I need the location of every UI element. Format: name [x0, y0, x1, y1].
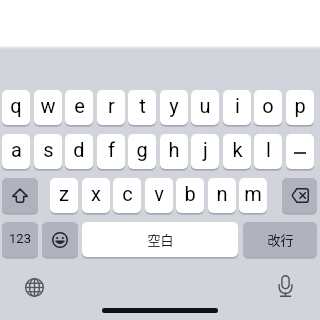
- button[interactable]: y: [160, 90, 188, 125]
- button[interactable]: Emoji: [42, 222, 78, 257]
- button[interactable]: Dash: [286, 134, 314, 169]
- button[interactable]: p: [286, 90, 314, 125]
- button[interactable]: Dictation: [269, 275, 301, 297]
- button[interactable]: m: [239, 178, 267, 213]
- staticText: j: [203, 138, 208, 161]
- staticText: x: [91, 182, 101, 205]
- staticText: q: [10, 94, 22, 117]
- button[interactable]: 改行: [243, 222, 317, 257]
- button[interactable]: v: [145, 178, 173, 213]
- button[interactable]: 空白: [82, 222, 238, 257]
- staticText: e: [74, 94, 85, 117]
- button[interactable]: e: [65, 90, 93, 125]
- button[interactable]: f: [97, 134, 125, 169]
- button[interactable]: s: [34, 134, 62, 169]
- button[interactable]: q: [2, 90, 30, 125]
- button[interactable]: x: [82, 178, 110, 213]
- staticText: b: [184, 182, 196, 205]
- staticText: l: [266, 138, 271, 161]
- staticText: v: [154, 182, 164, 205]
- button[interactable]: Shift: [2, 178, 38, 213]
- button[interactable]: i: [223, 90, 251, 125]
- staticText: m: [244, 182, 262, 205]
- button[interactable]: j: [191, 134, 219, 169]
- staticText: u: [199, 94, 211, 117]
- staticText: p: [294, 94, 306, 117]
- button[interactable]: z: [50, 178, 78, 213]
- staticText: 123: [9, 231, 31, 246]
- staticText: s: [43, 138, 54, 161]
- staticText: z: [59, 182, 69, 205]
- button[interactable]: t: [128, 90, 156, 125]
- staticText: t: [139, 94, 146, 117]
- staticText: i: [235, 94, 240, 117]
- staticText: o: [262, 94, 274, 117]
- button[interactable]: c: [113, 178, 141, 213]
- button[interactable]: r: [97, 90, 125, 125]
- button[interactable]: a: [2, 134, 30, 169]
- button[interactable]: u: [191, 90, 219, 125]
- staticText: h: [168, 138, 180, 161]
- button[interactable]: n: [208, 178, 236, 213]
- button[interactable]: d: [65, 134, 93, 169]
- button[interactable]: k: [223, 134, 251, 169]
- staticText: r: [108, 94, 115, 117]
- button[interactable]: l: [254, 134, 282, 169]
- staticText: g: [136, 138, 148, 161]
- staticText: 空白: [147, 230, 174, 249]
- staticText: d: [73, 138, 85, 161]
- button[interactable]: g: [128, 134, 156, 169]
- button[interactable]: w: [34, 90, 62, 125]
- button[interactable]: h: [160, 134, 188, 169]
- staticText: f: [108, 138, 115, 161]
- button[interactable]: Backspace: [282, 178, 317, 213]
- staticText: y: [169, 94, 179, 117]
- staticText: 改行: [267, 230, 294, 249]
- button[interactable]: Switch keyboard: [18, 271, 50, 303]
- button[interactable]: b: [176, 178, 204, 213]
- button[interactable]: o: [254, 90, 282, 125]
- staticText: w: [40, 94, 56, 117]
- staticText: a: [11, 138, 22, 161]
- staticText: c: [122, 182, 133, 205]
- staticText: n: [216, 182, 228, 205]
- staticText: k: [232, 138, 243, 161]
- button[interactable]: 123: [2, 222, 38, 257]
